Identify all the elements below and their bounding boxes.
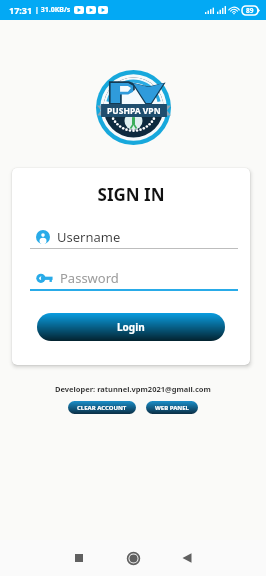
button[interactable]: Login [37, 313, 225, 341]
staticText: Password [60, 269, 119, 287]
staticText: 89 [246, 6, 254, 15]
staticText: 17:31 [9, 4, 33, 16]
button[interactable]: Recent apps [65, 544, 93, 572]
staticText: | 31.0KB/s [35, 5, 71, 15]
button[interactable]: WEB PANEL [146, 401, 198, 414]
staticText: WEB PANEL [155, 404, 189, 412]
button[interactable]: CLEAR ACCOUNT [68, 401, 136, 414]
button[interactable]: Home [119, 544, 147, 572]
staticText: SIGN IN [12, 183, 250, 206]
staticText: Username [57, 228, 121, 246]
staticText: CLEAR ACCOUNT [77, 404, 127, 412]
staticText: PUSHPA VPN [107, 105, 161, 117]
staticText: Developer: ratunnel.vpm2021@gmail.com [55, 384, 211, 394]
staticText: Login [117, 320, 145, 334]
button[interactable]: Back [173, 544, 201, 572]
